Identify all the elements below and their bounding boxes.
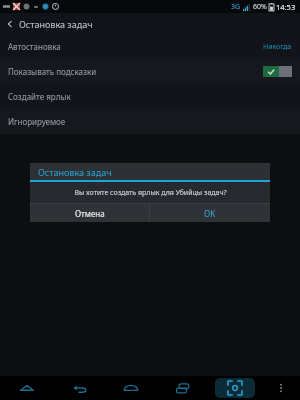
staticText: Остановка задач <box>38 166 112 178</box>
staticText: 14:53 <box>276 2 296 12</box>
staticText: Вы хотите создать ярлык для Убийцы задач… <box>74 188 227 198</box>
staticText: Остановка задач <box>19 18 93 30</box>
button[interactable]: Создайте ярлык <box>0 84 300 109</box>
button[interactable]: Back <box>0 13 300 34</box>
button[interactable]: Recents <box>157 376 209 400</box>
staticText: Создайте ярлык <box>8 91 71 102</box>
staticText: Показывать подсказки <box>8 66 97 77</box>
staticText: OK <box>204 208 216 219</box>
button[interactable]: Автостановка <box>0 34 300 59</box>
button[interactable]: Toggle <box>263 66 292 77</box>
staticText: 60% <box>253 2 267 12</box>
button[interactable]: Отмена <box>30 204 149 222</box>
button[interactable]: More options <box>261 376 300 400</box>
staticText: 3G <box>231 2 241 12</box>
button[interactable]: Home <box>105 376 157 400</box>
staticText: Отмена <box>75 208 105 219</box>
button[interactable]: Игнорируемое <box>0 109 300 134</box>
button[interactable]: Back <box>53 376 105 400</box>
staticText: Никогда <box>263 42 292 52</box>
button[interactable]: Показывать подсказки <box>0 59 300 84</box>
staticText: Игнорируемое <box>8 116 66 127</box>
button[interactable]: OK <box>150 204 270 222</box>
other: Back <box>6 20 14 28</box>
button[interactable]: Screenshot <box>215 378 255 398</box>
staticText: Автостановка <box>8 41 61 52</box>
button[interactable]: Menu <box>0 376 53 400</box>
